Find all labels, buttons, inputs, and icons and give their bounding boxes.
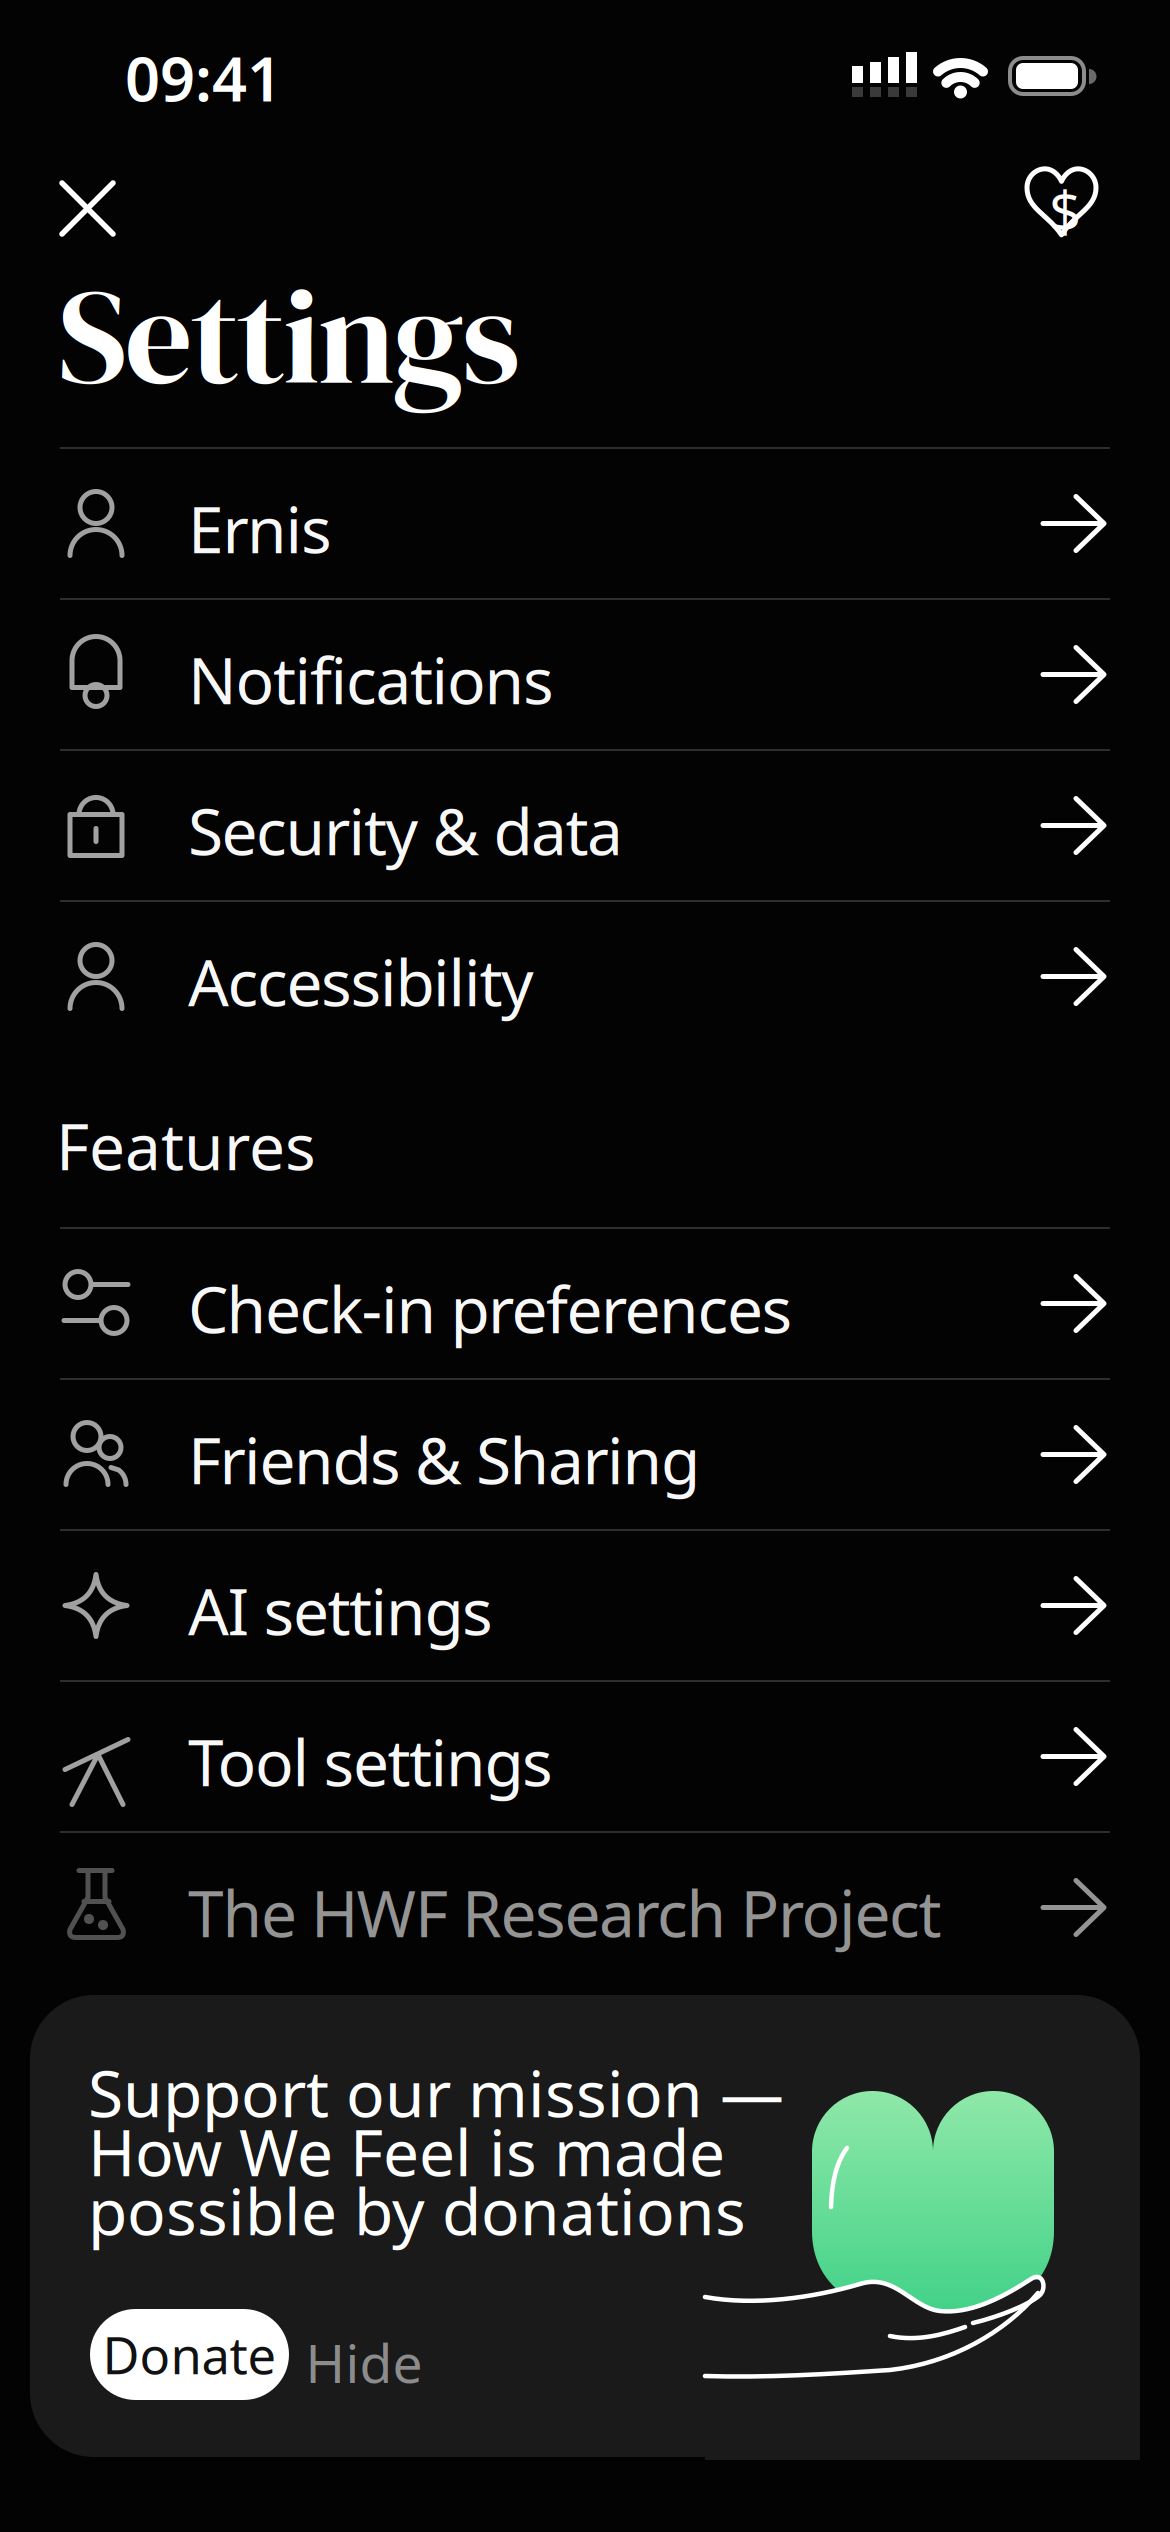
button[interactable]: Hide — [314, 2309, 414, 2400]
button[interactable]: Security & data — [60, 751, 1110, 900]
staticText: Features — [56, 1103, 316, 1188]
staticText: Hide — [305, 2327, 422, 2398]
staticText: $ — [1049, 174, 1081, 248]
staticText: Donate — [102, 2321, 276, 2388]
staticText: Accessibility — [188, 939, 534, 1024]
button[interactable]: Donate — [90, 2309, 289, 2400]
staticText: The HWF Research Project — [188, 1870, 941, 1955]
button[interactable]: Accessibility — [60, 902, 1110, 1051]
button[interactable]: Donate — [1027, 173, 1096, 239]
staticText: AI settings — [188, 1568, 493, 1653]
staticText: Support our mission — How We Feel is mad… — [88, 2050, 784, 2253]
button[interactable]: Notifications — [60, 600, 1110, 749]
staticText: Check-in preferences — [188, 1266, 792, 1351]
button[interactable]: Tool settings — [60, 1682, 1110, 1831]
staticText: Security & data — [188, 788, 623, 873]
staticText: Tool settings — [188, 1719, 553, 1804]
button[interactable]: Close — [59, 180, 116, 237]
button[interactable]: AI settings — [60, 1531, 1110, 1680]
staticText: Notifications — [188, 637, 554, 722]
button[interactable]: Check-in preferences — [60, 1229, 1110, 1378]
button[interactable]: Ernis — [60, 449, 1110, 598]
staticText: Ernis — [188, 486, 332, 571]
button[interactable]: Friends & Sharing — [60, 1380, 1110, 1529]
staticText: 09:41 — [125, 37, 282, 118]
button[interactable]: The HWF Research Project — [60, 1833, 1110, 1982]
staticText: Friends & Sharing — [188, 1417, 700, 1502]
staticText: Settings — [58, 244, 520, 427]
